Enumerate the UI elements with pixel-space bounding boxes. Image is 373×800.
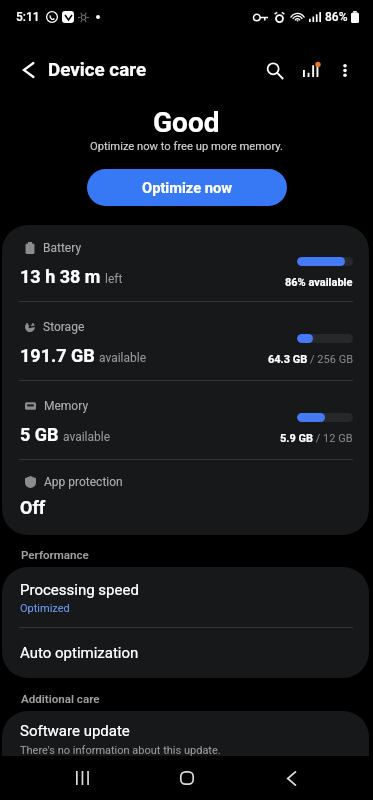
button[interactable]: Memory bbox=[2, 381, 369, 459]
staticText: available bbox=[99, 351, 147, 365]
staticText: 86% bbox=[325, 10, 348, 24]
button[interactable]: Home bbox=[165, 756, 209, 800]
button[interactable]: Optimize now bbox=[87, 169, 287, 206]
staticText: 86% available bbox=[285, 276, 353, 289]
staticText: 5:11 bbox=[16, 10, 40, 24]
button[interactable]: Software update bbox=[2, 711, 369, 757]
staticText: Optimize now bbox=[142, 179, 233, 196]
staticText: Software update bbox=[20, 722, 130, 740]
staticText: left bbox=[105, 272, 123, 286]
button[interactable]: Battery bbox=[2, 225, 369, 301]
staticText: Additional care bbox=[21, 692, 100, 706]
button[interactable]: Search bbox=[254, 50, 294, 90]
staticText: Memory bbox=[44, 399, 89, 413]
button[interactable]: Processing speed bbox=[2, 567, 369, 627]
button[interactable]: App protection bbox=[2, 460, 369, 535]
staticText: App protection bbox=[44, 475, 123, 489]
staticText: Storage bbox=[43, 320, 85, 334]
staticText: Performance bbox=[21, 548, 89, 562]
staticText: Optimize now to free up more memory. bbox=[90, 140, 284, 153]
staticText: 5 GB bbox=[20, 424, 59, 445]
button[interactable]: Back bbox=[269, 756, 313, 800]
button[interactable]: Recent apps bbox=[61, 756, 105, 800]
staticText: 5.9 GB / 12 GB bbox=[280, 432, 353, 445]
staticText: Processing speed bbox=[20, 581, 139, 599]
staticText: Off bbox=[20, 497, 46, 518]
button[interactable]: Navigate up bbox=[6, 48, 50, 92]
staticText: 13 h 38 m bbox=[20, 266, 101, 287]
button[interactable]: Storage bbox=[2, 302, 369, 380]
staticText: There's no information about this update… bbox=[20, 744, 221, 757]
button[interactable]: More options bbox=[325, 50, 365, 90]
staticText: 64.3 GB / 256 GB bbox=[268, 353, 353, 366]
staticText: Auto optimization bbox=[20, 644, 139, 662]
staticText: Optimized bbox=[20, 602, 70, 615]
staticText: available bbox=[63, 430, 111, 444]
button[interactable]: Usage statistics bbox=[291, 50, 331, 90]
staticText: Battery bbox=[43, 241, 82, 255]
staticText: 191.7 GB bbox=[20, 345, 95, 366]
staticText: Device care bbox=[48, 59, 147, 81]
button[interactable]: Auto optimization bbox=[2, 628, 369, 678]
staticText: Good bbox=[153, 106, 220, 139]
